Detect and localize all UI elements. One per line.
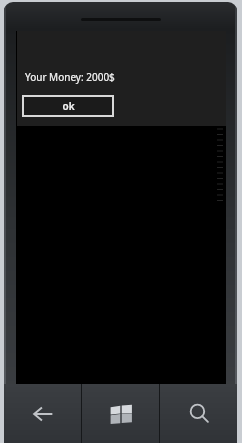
staticText: Your Money: 2000$	[25, 70, 115, 84]
button[interactable]: ok	[22, 95, 114, 117]
button[interactable]: Search	[160, 384, 237, 443]
staticText: ok	[62, 99, 75, 113]
button[interactable]: Back	[4, 384, 81, 443]
button[interactable]: Start	[82, 384, 159, 443]
